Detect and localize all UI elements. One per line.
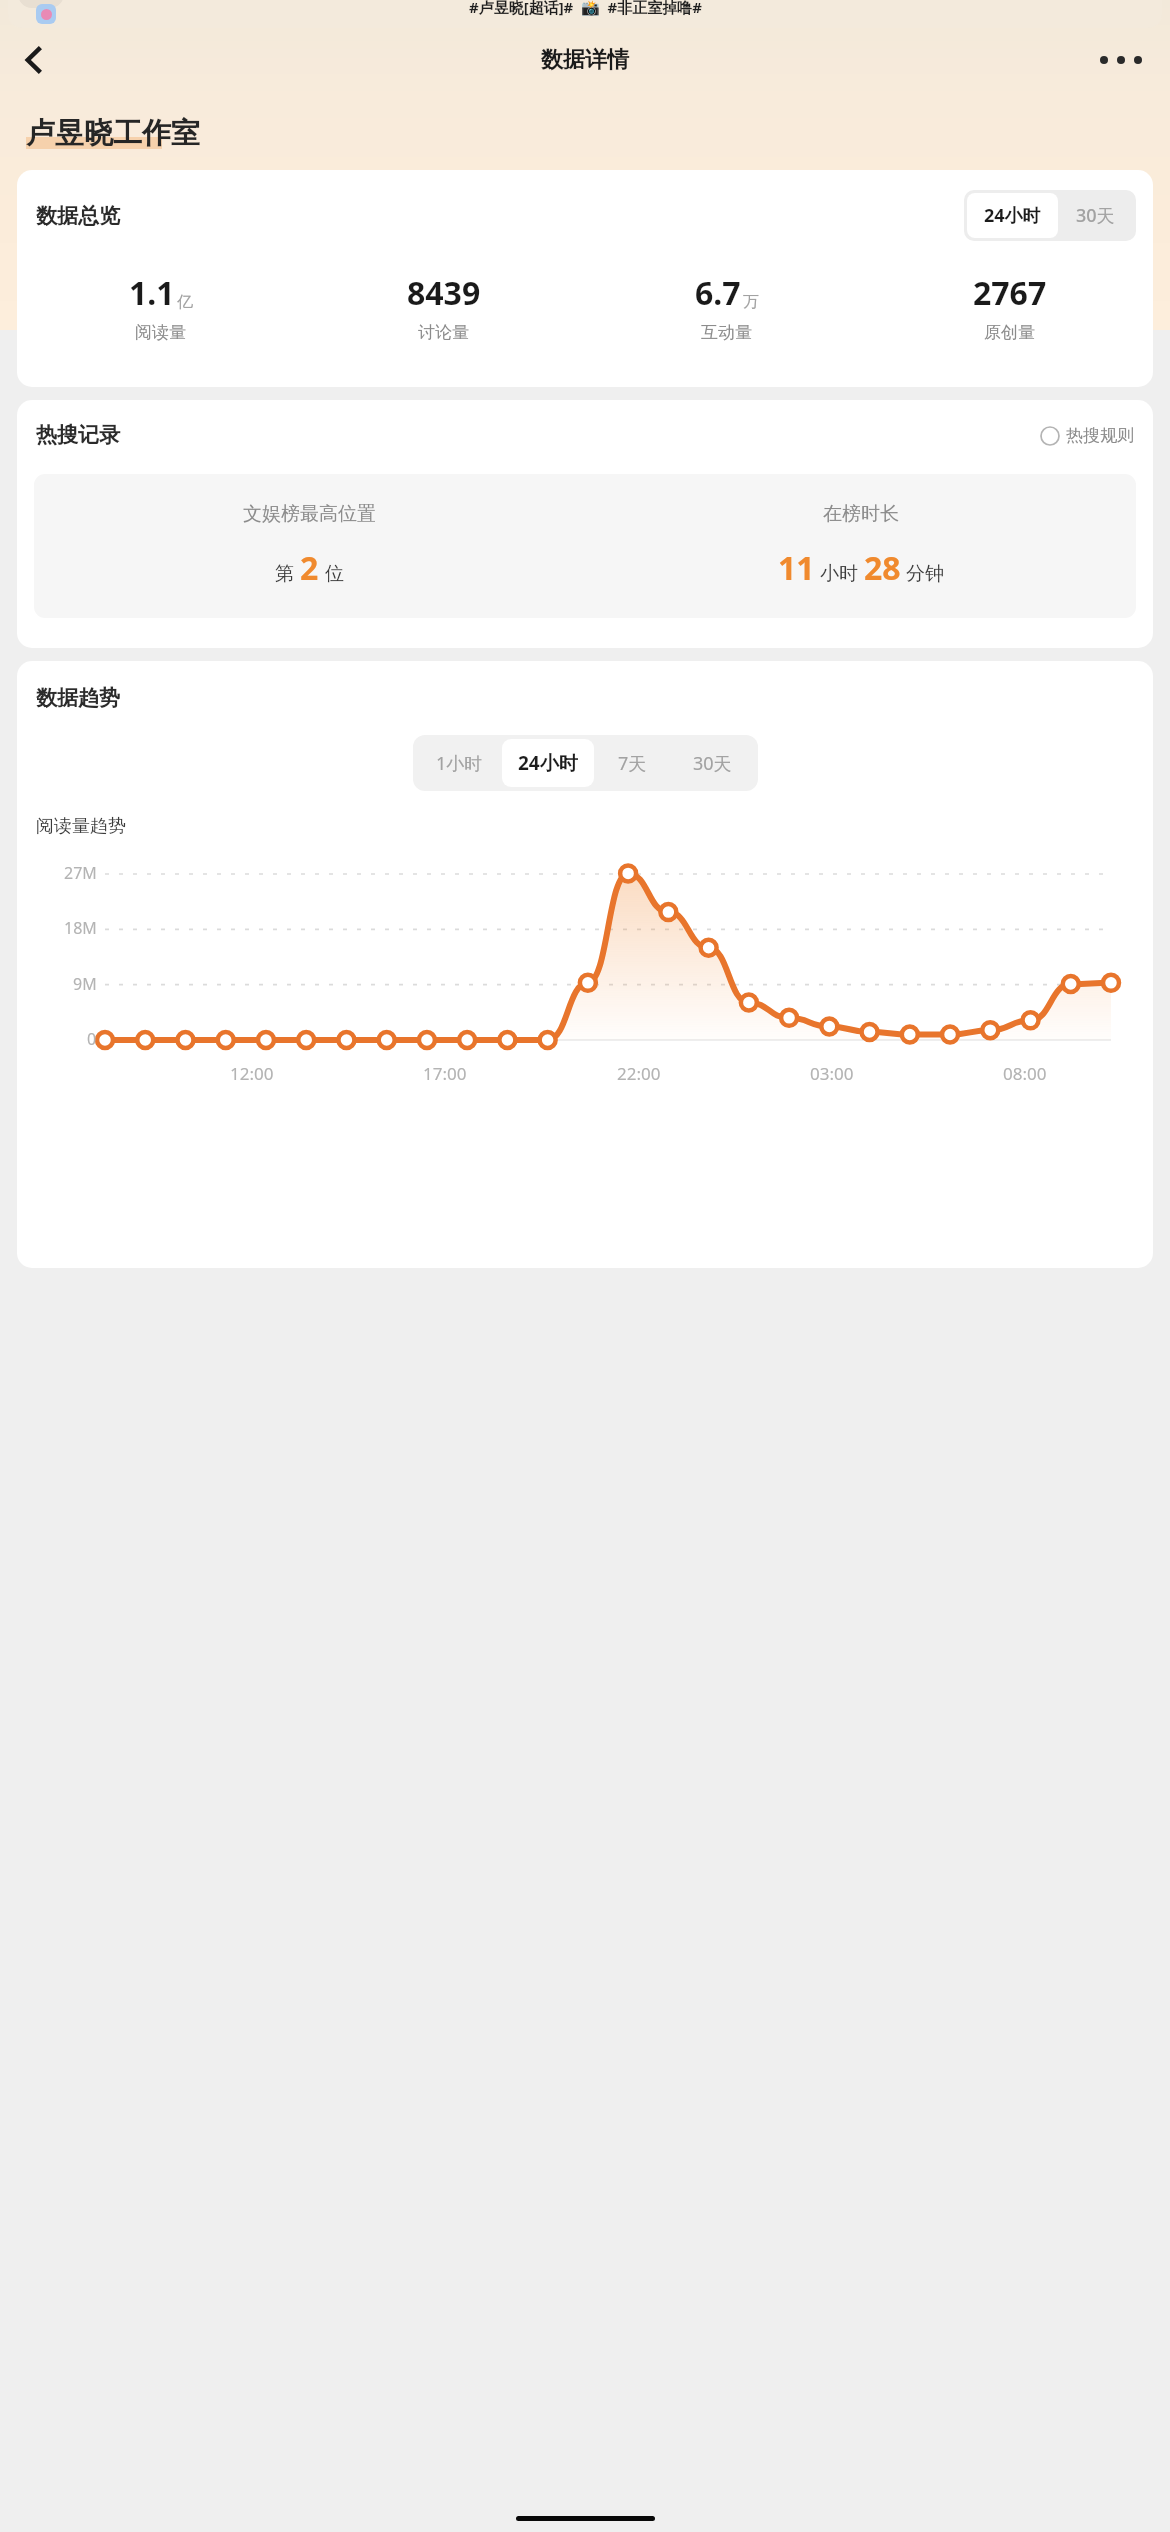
- button[interactable]: 在榜时长: [585, 502, 1136, 590]
- button[interactable]: 7天: [618, 751, 647, 776]
- button[interactable]: 24小时: [984, 203, 1041, 228]
- staticText: 24小时: [518, 750, 578, 776]
- staticText: 数据总览: [36, 203, 120, 229]
- button[interactable]: 热搜规则: [1040, 425, 1134, 446]
- staticText: 热搜规则: [1066, 425, 1134, 446]
- staticText: 小时: [820, 562, 858, 586]
- staticText: 11: [778, 546, 815, 590]
- button[interactable]: #卢昱晓[超话]# 📸 #非正室掉噜#: [8, 0, 1162, 28]
- button[interactable]: 30天: [693, 751, 732, 776]
- staticText: 热搜记录: [36, 422, 120, 448]
- button[interactable]: 1.1: [19, 271, 302, 343]
- button[interactable]: More options: [1090, 35, 1152, 85]
- staticText: 24小时: [984, 203, 1041, 228]
- staticText: 12:00: [230, 1062, 274, 1085]
- staticText: 22:00: [617, 1062, 661, 1085]
- staticText: 在榜时长: [823, 502, 899, 526]
- staticText: 03:00: [810, 1062, 854, 1085]
- staticText: 7天: [618, 751, 647, 776]
- staticText: 2767: [973, 271, 1047, 315]
- staticText: 第: [275, 562, 294, 586]
- staticText: 讨论量: [418, 322, 469, 343]
- staticText: 位: [325, 562, 344, 586]
- button[interactable]: 24小时: [518, 750, 578, 776]
- button[interactable]: 文娱榜最高位置: [34, 502, 585, 590]
- staticText: 数据趋势: [36, 685, 120, 711]
- button[interactable]: 2767: [868, 271, 1151, 343]
- staticText: 卢昱晓工作室: [26, 115, 200, 152]
- staticText: 28: [864, 546, 901, 590]
- staticText: 30天: [693, 751, 732, 776]
- staticText: 1小时: [436, 751, 483, 776]
- staticText: 万: [743, 292, 759, 312]
- staticText: 数据详情: [541, 46, 629, 74]
- staticText: 9M: [73, 973, 97, 995]
- staticText: 6.7: [695, 271, 741, 315]
- staticText: 文娱榜最高位置: [243, 502, 376, 526]
- button[interactable]: 6.7: [585, 271, 868, 343]
- staticText: 阅读量趋势: [36, 815, 126, 838]
- staticText: #卢昱晓[超话]# 📸 #非正室掉噜#: [469, 0, 702, 17]
- staticText: 27M: [64, 862, 97, 884]
- staticText: 分钟: [906, 562, 944, 586]
- staticText: 08:00: [1003, 1062, 1047, 1085]
- staticText: 2: [300, 546, 319, 590]
- staticText: 17:00: [423, 1062, 467, 1085]
- button[interactable]: 8439: [302, 271, 585, 343]
- button[interactable]: 1小时: [436, 751, 483, 776]
- staticText: 1.1: [129, 271, 175, 315]
- staticText: 30天: [1076, 203, 1115, 228]
- staticText: 原创量: [984, 322, 1035, 343]
- button[interactable]: Back: [6, 32, 62, 88]
- staticText: 8439: [407, 271, 481, 315]
- button[interactable]: 30天: [1076, 203, 1115, 228]
- staticText: 互动量: [701, 322, 752, 343]
- staticText: 亿: [177, 292, 193, 312]
- staticText: 阅读量: [135, 322, 186, 343]
- staticText: 0: [87, 1028, 97, 1050]
- staticText: 18M: [64, 917, 97, 939]
